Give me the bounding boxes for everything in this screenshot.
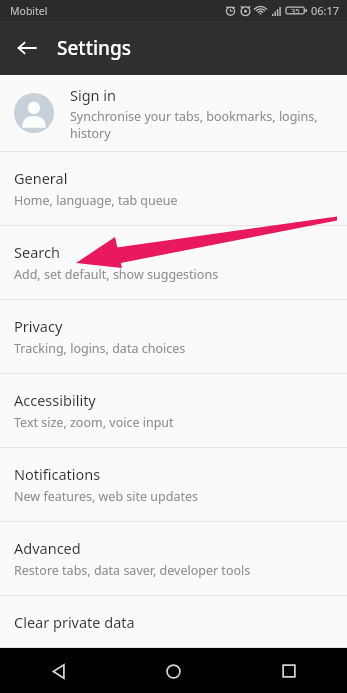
button[interactable]: Notifications — [0, 448, 347, 521]
staticText: 06:17 — [311, 3, 340, 18]
button[interactable]: Recent apps — [267, 649, 311, 693]
button[interactable]: Accessibility — [0, 374, 347, 447]
staticText: Settings — [57, 35, 131, 61]
staticText: Privacy — [14, 316, 63, 336]
staticText: Synchronise your tabs, bookmarks, logins… — [70, 108, 329, 142]
button[interactable]: Back — [7, 28, 47, 68]
staticText: Text size, zoom, voice input — [14, 414, 174, 431]
staticText: General — [14, 168, 68, 188]
staticText: Clear private data — [14, 612, 135, 632]
staticText: Search — [14, 242, 60, 262]
button[interactable]: Sign in — [0, 75, 347, 151]
staticText: Notifications — [14, 464, 101, 484]
staticText: Restore tabs, data saver, developer tool… — [14, 562, 251, 579]
staticText: Add, set default, show suggestions — [14, 266, 219, 283]
button[interactable]: Advanced — [0, 522, 347, 595]
staticText: 35 — [291, 6, 300, 16]
button[interactable]: General — [0, 152, 347, 225]
staticText: Tracking, logins, data choices — [14, 340, 186, 357]
staticText: Mobitel — [10, 4, 48, 18]
staticText: Home, language, tab queue — [14, 192, 178, 209]
staticText: New features, web site updates — [14, 488, 199, 505]
button[interactable]: Back — [36, 649, 80, 693]
staticText: Accessibility — [14, 390, 96, 410]
button[interactable]: Clear private data — [0, 596, 347, 647]
button[interactable]: Home — [151, 649, 195, 693]
button[interactable]: Search — [0, 226, 347, 299]
staticText: Sign in — [70, 85, 117, 105]
staticText: Advanced — [14, 538, 81, 558]
button[interactable]: Privacy — [0, 300, 347, 373]
